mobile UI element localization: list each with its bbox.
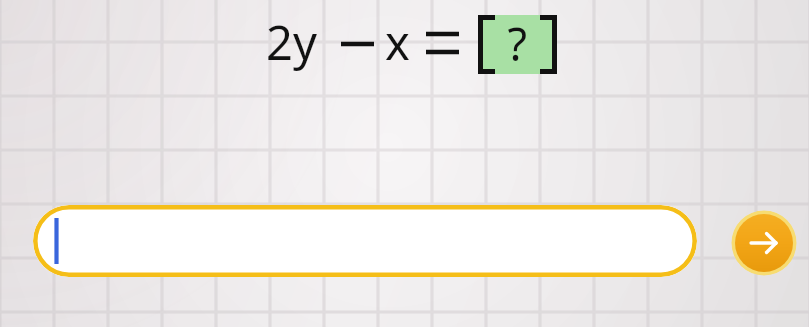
button[interactable]: Submit answer (731, 210, 797, 276)
button[interactable] (33, 205, 697, 277)
